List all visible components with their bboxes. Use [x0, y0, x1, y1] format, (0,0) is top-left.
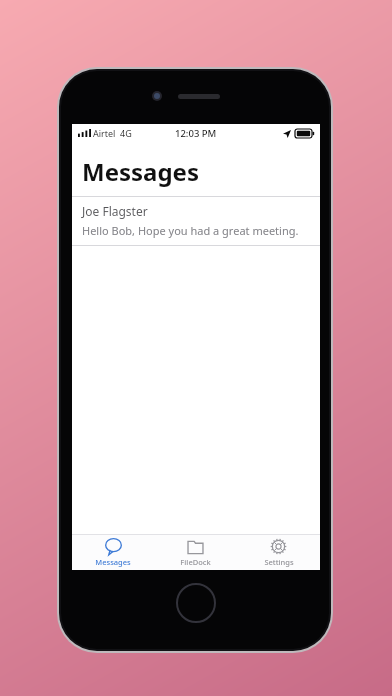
- staticText: Hello Bob, Hope you had a great meeting.: [82, 223, 299, 238]
- staticText: 4G: [120, 127, 132, 139]
- staticText: 12:03 PM: [175, 127, 217, 140]
- staticText: Settings: [264, 557, 294, 567]
- staticText: Messages: [82, 155, 199, 188]
- button[interactable]: Messages: [72, 535, 154, 570]
- staticText: Joe Flagster: [82, 203, 148, 219]
- staticText: Messages: [95, 557, 131, 567]
- staticText: Airtel: [93, 127, 116, 139]
- button[interactable]: Joe Flagster: [72, 197, 320, 245]
- button[interactable]: FileDock: [154, 535, 237, 570]
- staticText: FileDock: [180, 557, 211, 567]
- button[interactable]: Settings: [237, 535, 320, 570]
